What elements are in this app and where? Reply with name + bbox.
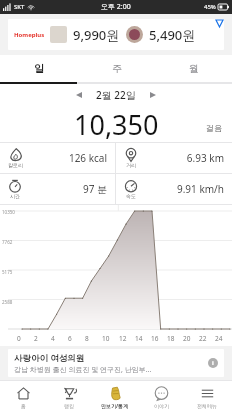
staticText: 7762 [2,239,13,245]
staticText: 6 [68,334,72,343]
staticText: 2588 [2,299,13,305]
staticText: 2월 22일 [96,88,136,102]
staticText: Homeplus [14,31,45,39]
staticText: 오후 2:00 [101,2,131,12]
button[interactable]: 주 [78,55,155,82]
staticText: 월 [189,62,199,75]
button[interactable]: 랭킹 [46,381,92,414]
button[interactable]: Next day [144,86,162,104]
staticText: 12 [119,334,127,343]
staticText: 10 [102,334,110,343]
staticText: 6.93 km [138,151,224,165]
staticText: 사랑아이 여성의원 [14,352,85,364]
staticText: 랭킹 [64,403,74,409]
staticText: 강남 차병원 출신 의료진 및 연구진, 난임부… [14,365,152,375]
staticText: 0 [17,334,21,343]
staticText: 22 [199,334,207,343]
staticText: 시간 [10,193,20,199]
button[interactable]: 칼로리 [0,143,115,173]
button[interactable]: 거리 [116,143,232,173]
staticText: 10350 [2,209,15,215]
staticText: 20 [183,334,191,343]
staticText: 5,490원 [149,26,196,44]
button[interactable]: 월 [155,55,232,82]
staticText: 4 [51,334,55,343]
staticText: 걸음 [206,123,222,133]
staticText: 거리 [126,162,136,168]
button[interactable]: 일 [0,55,78,82]
button[interactable]: 전체메뉴 [184,381,230,414]
button[interactable]: 이야기 [138,381,184,414]
staticText: 9,990원 [73,26,120,44]
staticText: 5175 [2,269,13,275]
staticText: 14 [135,334,143,343]
staticText: 8 [85,334,89,343]
button[interactable]: 만보기/통계 [92,381,138,414]
staticText: 10,350 [74,106,159,142]
staticText: 97 분 [22,182,107,196]
staticText: 이야기 [154,403,169,409]
staticText: 속도 [126,193,136,199]
staticText: 18 [167,334,175,343]
staticText: 24 [215,334,223,343]
staticText: SKT [14,3,25,11]
button[interactable]: 사랑아이 여성의원 [8,349,224,377]
staticText: i [212,359,214,367]
staticText: 칼로리 [8,162,23,168]
staticText: 일 [34,62,44,75]
button[interactable]: 속도 [116,174,232,204]
staticText: 9.91 km/h [138,182,224,196]
staticText: 전체메뉴 [197,403,217,409]
staticText: 45% [204,3,216,11]
staticText: 주 [112,62,122,75]
staticText: 홈 [21,403,26,409]
other: Ad info [208,358,218,368]
button[interactable]: Homeplus [8,19,224,50]
staticText: 126 kcal [23,151,107,165]
button[interactable]: 홈 [0,381,46,414]
button[interactable]: Previous day [70,86,88,104]
button[interactable]: 시간 [0,174,115,204]
staticText: 2 [34,334,38,343]
staticText: 만보기/통계 [101,403,129,410]
staticText: 16 [151,334,159,343]
